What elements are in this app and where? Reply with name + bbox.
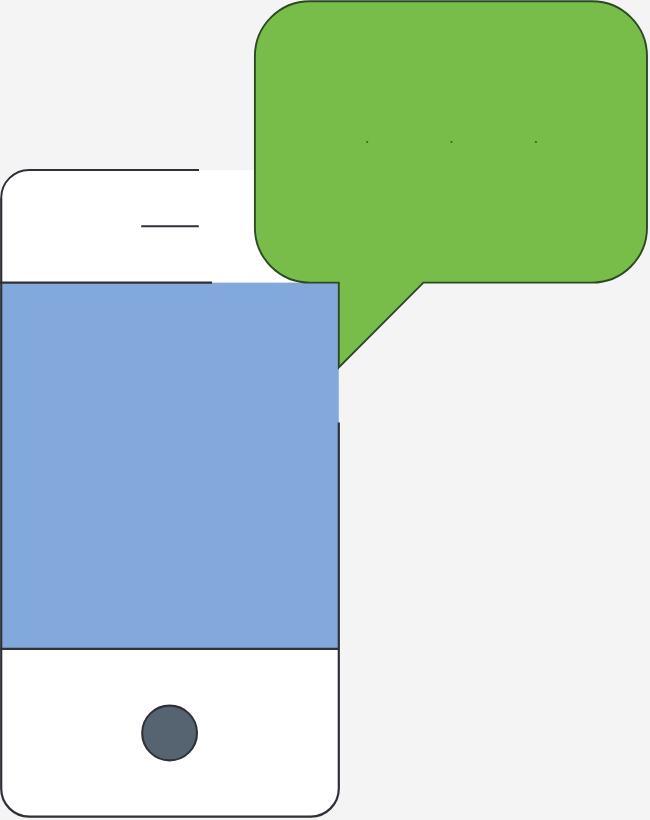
button[interactable]: Chat message bubble <box>255 1 647 282</box>
button[interactable]: Phone screen <box>1 283 339 649</box>
button[interactable]: Home button <box>142 705 198 761</box>
